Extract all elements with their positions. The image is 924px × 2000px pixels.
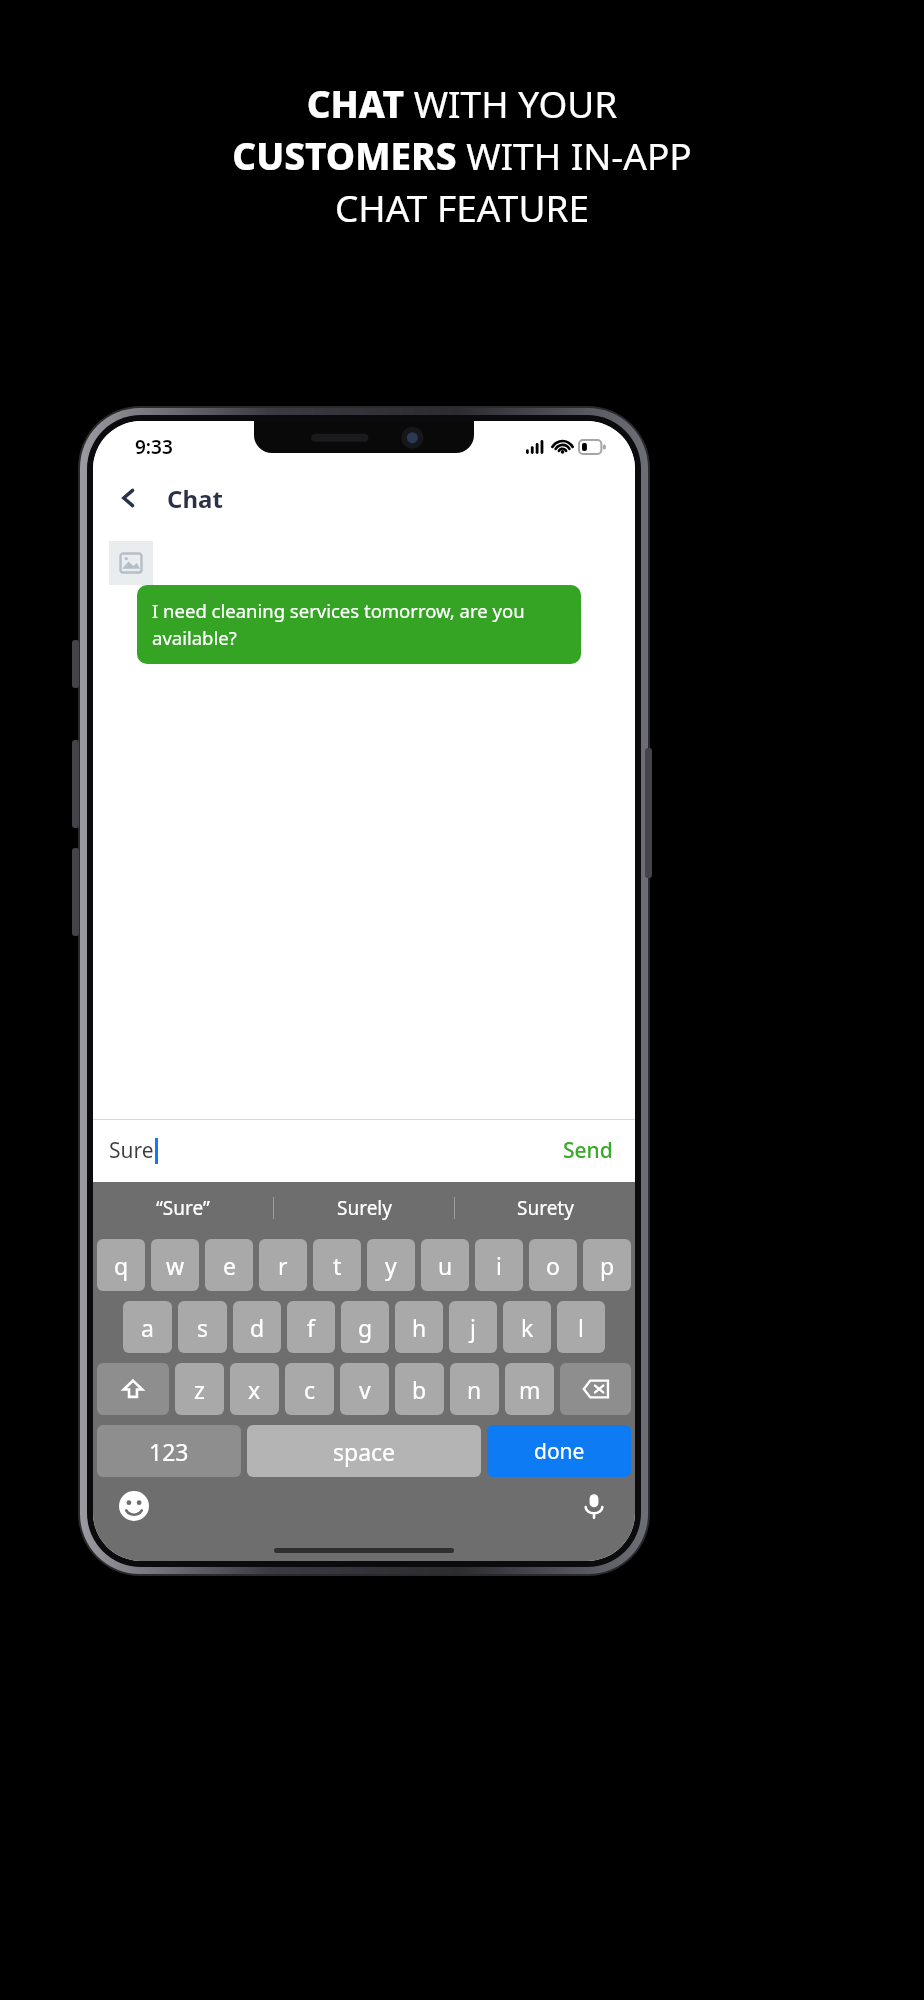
button[interactable]: b	[395, 1363, 444, 1415]
staticText: h	[412, 1312, 427, 1343]
button[interactable]: d	[233, 1301, 281, 1353]
staticText: c	[304, 1374, 316, 1405]
staticText: m	[519, 1374, 541, 1405]
button[interactable]: t	[313, 1239, 361, 1291]
staticText: 9:33	[135, 434, 173, 460]
staticText: x	[248, 1374, 261, 1405]
staticText: e	[223, 1250, 236, 1281]
staticText: v	[359, 1374, 371, 1405]
staticText: p	[600, 1250, 615, 1281]
staticText: o	[546, 1250, 560, 1281]
button[interactable]: Send	[557, 1128, 619, 1173]
staticText: Send	[563, 1136, 613, 1165]
button[interactable]: Surely	[274, 1182, 454, 1234]
staticText: t	[333, 1250, 342, 1281]
button[interactable]: r	[259, 1239, 307, 1291]
staticText: “Sure”	[156, 1195, 210, 1221]
button[interactable]: w	[151, 1239, 199, 1291]
button[interactable]: v	[340, 1363, 389, 1415]
button[interactable]: space	[247, 1425, 481, 1477]
button[interactable]: n	[450, 1363, 499, 1415]
staticText: done	[534, 1437, 585, 1466]
staticText: f	[307, 1312, 315, 1343]
staticText: w	[166, 1250, 185, 1281]
button[interactable]: o	[529, 1239, 577, 1291]
staticText: I need cleaning services tomorrow, are y…	[152, 598, 566, 651]
staticText: l	[578, 1312, 584, 1343]
button[interactable]: j	[449, 1301, 497, 1353]
button[interactable]: Dictate	[575, 1487, 613, 1525]
staticText: g	[358, 1312, 373, 1343]
staticText: y	[385, 1250, 397, 1281]
button[interactable]: I need cleaning services tomorrow, are y…	[137, 585, 581, 664]
staticText: q	[114, 1250, 129, 1281]
button[interactable]: x	[230, 1363, 279, 1415]
button[interactable]: f	[287, 1301, 335, 1353]
button[interactable]: Back	[107, 476, 151, 520]
button[interactable]: a	[123, 1301, 172, 1353]
staticText: u	[438, 1250, 453, 1281]
button[interactable]: Emoji	[115, 1487, 153, 1525]
button[interactable]: Backspace	[560, 1363, 631, 1415]
button[interactable]: y	[367, 1239, 415, 1291]
staticText: j	[470, 1312, 476, 1343]
button[interactable]: Shift	[97, 1363, 169, 1415]
staticText: d	[250, 1312, 265, 1343]
staticText: a	[141, 1312, 154, 1343]
button[interactable]: u	[421, 1239, 469, 1291]
staticText: 123	[149, 1436, 189, 1467]
staticText: s	[197, 1312, 209, 1343]
staticText: Surety	[517, 1195, 574, 1221]
staticText: Chat	[167, 482, 223, 515]
button[interactable]: 123	[97, 1425, 241, 1477]
button[interactable]: done	[487, 1425, 631, 1477]
staticText: i	[496, 1250, 502, 1281]
button[interactable]: Surety	[455, 1182, 635, 1234]
button[interactable]: p	[583, 1239, 631, 1291]
staticText: k	[521, 1312, 534, 1343]
staticText: z	[194, 1374, 205, 1405]
staticText: space	[333, 1436, 396, 1467]
button[interactable]: g	[341, 1301, 389, 1353]
button[interactable]: z	[175, 1363, 224, 1415]
staticText: n	[467, 1374, 482, 1405]
staticText: Surely	[337, 1195, 392, 1221]
button[interactable]: h	[395, 1301, 443, 1353]
button[interactable]: l	[557, 1301, 605, 1353]
staticText: Sure	[109, 1136, 154, 1165]
button[interactable]: m	[505, 1363, 554, 1415]
button[interactable]: “Sure”	[93, 1182, 273, 1234]
button[interactable]: q	[97, 1239, 145, 1291]
button[interactable]: e	[205, 1239, 253, 1291]
button[interactable]: s	[178, 1301, 227, 1353]
button[interactable]: c	[285, 1363, 334, 1415]
staticText: b	[412, 1374, 427, 1405]
button[interactable]: i	[475, 1239, 523, 1291]
button[interactable]: k	[503, 1301, 551, 1353]
staticText: CHAT WITH YOUR CUSTOMERS WITH IN-APP CHA…	[232, 78, 692, 233]
staticText: r	[278, 1250, 288, 1281]
